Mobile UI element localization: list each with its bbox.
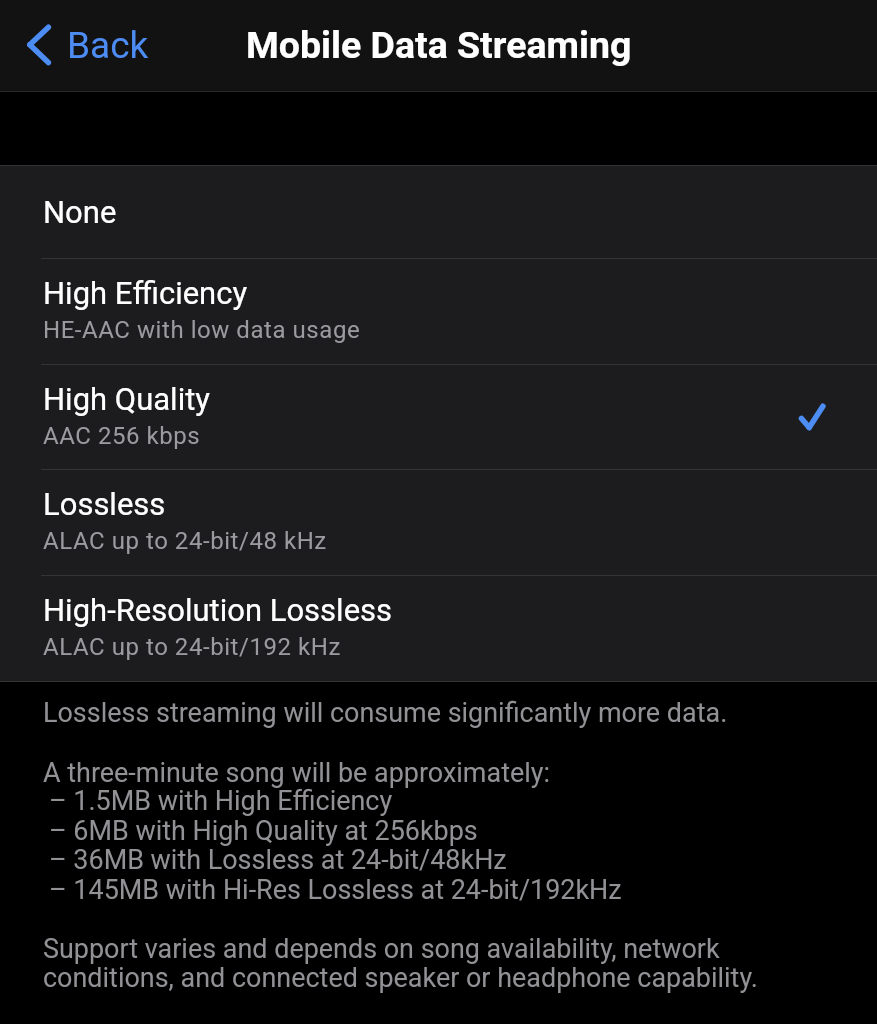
staticText: HE-AAC with low data usage <box>43 316 361 344</box>
staticText: AAC 256 kbps <box>43 422 201 450</box>
button[interactable]: Back <box>0 0 161 91</box>
staticText: – 145MB with Hi-Res Lossless at 24-bit/1… <box>49 874 622 906</box>
staticText: conditions, and connected speaker or hea… <box>43 962 758 994</box>
staticText: ALAC up to 24-bit/48 kHz <box>43 527 327 555</box>
staticText: – 6MB with High Quality at 256kbps <box>49 815 478 847</box>
button[interactable]: None <box>0 166 877 258</box>
button[interactable]: Lossless <box>0 470 877 575</box>
staticText: Mobile Data Streaming <box>246 23 632 67</box>
staticText: ALAC up to 24-bit/192 kHz <box>43 633 341 661</box>
staticText: Support varies and depends on song avail… <box>43 933 720 965</box>
staticText: Lossless <box>43 486 166 522</box>
button[interactable]: High-Resolution Lossless <box>0 576 877 681</box>
staticText: High Efficiency <box>43 275 248 311</box>
staticText: None <box>43 194 117 230</box>
staticText: A three-minute song will be approximatel… <box>43 757 551 789</box>
button[interactable]: High Efficiency <box>0 259 877 364</box>
button[interactable]: High Quality <box>0 365 877 469</box>
staticText: – 36MB with Lossless at 24-bit/48kHz <box>49 844 507 876</box>
staticText: Lossless streaming will consume signific… <box>43 697 728 729</box>
staticText: Back <box>67 24 149 67</box>
staticText: – 1.5MB with High Efficiency <box>49 785 393 817</box>
other: Selected <box>794 400 828 434</box>
staticText: High Quality <box>43 381 210 417</box>
staticText: High-Resolution Lossless <box>43 592 393 628</box>
